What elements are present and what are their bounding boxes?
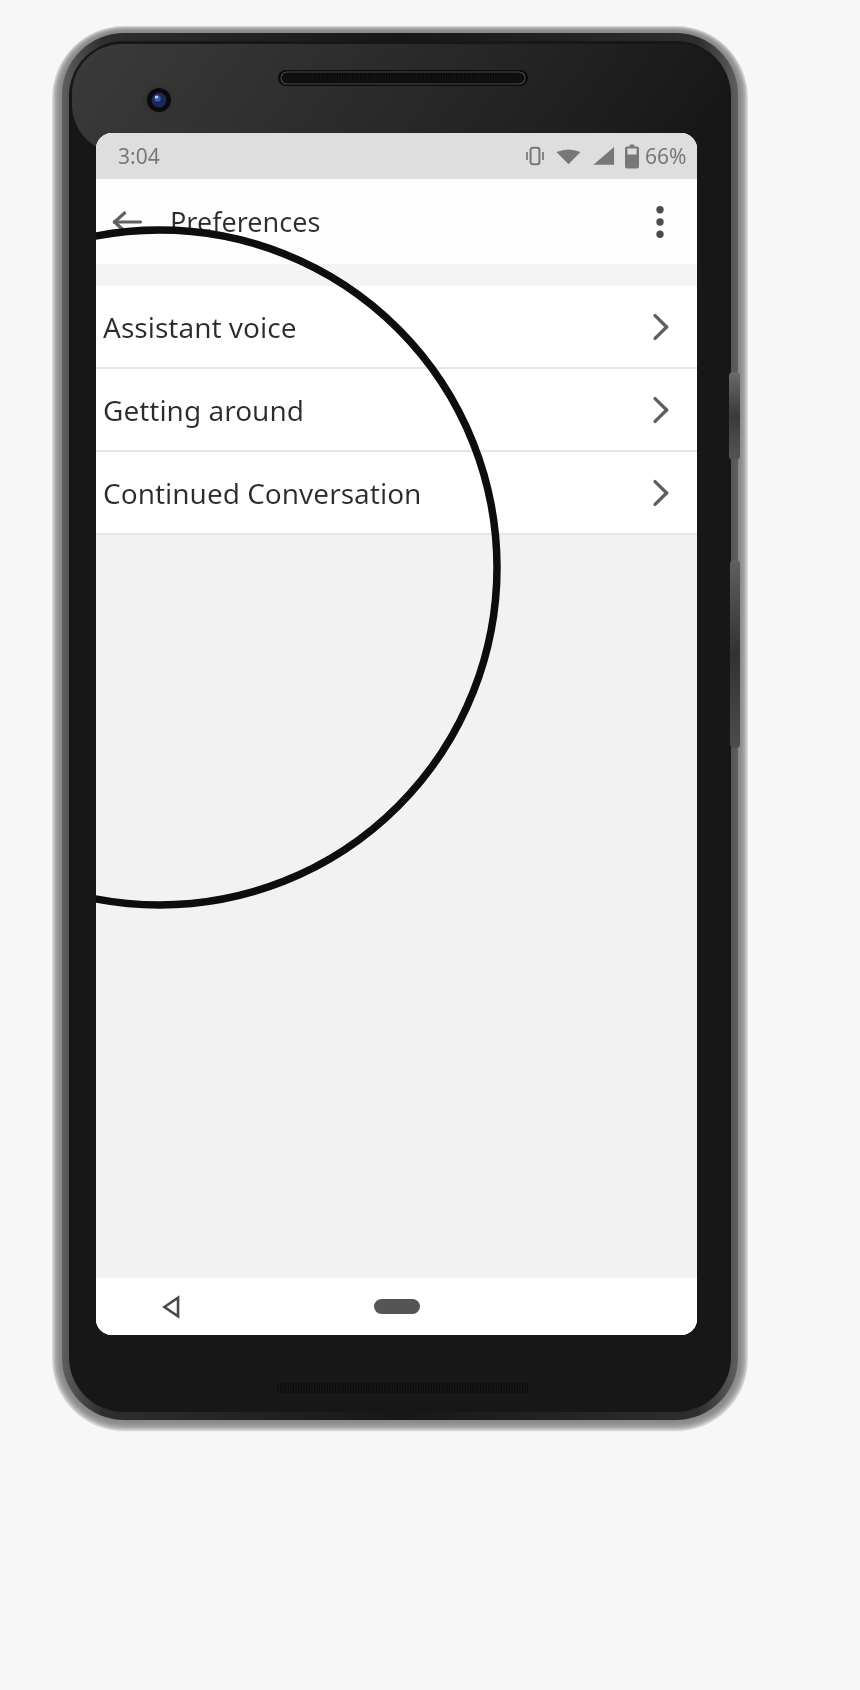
button[interactable]: Back bbox=[96, 1278, 246, 1335]
button[interactable]: Navigate up bbox=[96, 191, 158, 253]
staticText: Assistant voice bbox=[103, 308, 297, 346]
staticText: 66% bbox=[645, 142, 687, 171]
button[interactable]: Continued Conversation bbox=[96, 452, 697, 533]
staticText: Preferences bbox=[170, 203, 321, 240]
button[interactable]: More options bbox=[631, 193, 689, 251]
button[interactable]: Getting around bbox=[96, 369, 697, 450]
button[interactable]: Assistant voice bbox=[96, 286, 697, 367]
button[interactable]: Home bbox=[322, 1278, 472, 1335]
staticText: 3:04 bbox=[118, 142, 160, 171]
staticText: Getting around bbox=[103, 391, 304, 429]
staticText: Continued Conversation bbox=[103, 474, 422, 512]
